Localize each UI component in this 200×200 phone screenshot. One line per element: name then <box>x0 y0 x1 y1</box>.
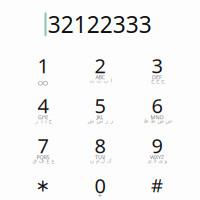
staticText: ﺍ ﺏ ﺕ ﺙ <box>89 78 111 84</box>
staticText: MNO <box>150 114 163 121</box>
staticText: 1 <box>37 52 48 79</box>
staticText: 8 <box>94 132 105 159</box>
button[interactable]: 0 <box>71 172 128 200</box>
staticText: ∗ <box>35 176 50 195</box>
staticText: ﻭ ﻯ ﻻ ﻱ <box>147 158 167 164</box>
staticText: 32122333 <box>48 9 152 39</box>
staticText: ABC <box>95 74 104 81</box>
button[interactable]: Star <box>14 172 71 200</box>
staticText: TUV <box>95 154 105 161</box>
button[interactable]: One, voicemail <box>14 52 71 92</box>
button[interactable]: 8 <box>71 132 128 172</box>
staticText: ﺝ ﺡ ﺥ <box>150 78 163 84</box>
staticText: PQRS <box>36 154 49 161</box>
staticText: 9 <box>151 132 162 159</box>
button[interactable]: 5 <box>71 92 128 132</box>
staticText: ﺥ ﺩ ﺫ ﺭ <box>35 118 51 124</box>
staticText: GHI <box>38 114 48 121</box>
staticText: ﺹ ﺽ ﻁ ﻅ <box>143 118 171 124</box>
staticText: 3 <box>151 52 162 79</box>
staticText: # <box>151 173 163 197</box>
staticText: ﻉ ﻍ ﻑ ﻕ <box>32 158 54 164</box>
staticText: 0 <box>94 172 105 199</box>
staticText: JKL <box>96 114 103 121</box>
button[interactable]: 4 <box>14 92 71 132</box>
staticText: 5 <box>94 92 105 119</box>
staticText: ﺭ ﺯ ﺱ ﺵ <box>87 118 113 124</box>
button[interactable]: 9 <box>128 132 185 172</box>
staticText: 4 <box>37 92 48 119</box>
staticText: WXYZ <box>150 154 164 161</box>
staticText: 7 <box>37 132 48 159</box>
button[interactable]: 2 <box>71 52 128 92</box>
staticText: 6 <box>151 92 162 119</box>
staticText: + <box>98 191 102 200</box>
staticText: ﻙ ﻝ ﻡ ﻥ <box>89 158 110 164</box>
button[interactable]: 6 <box>128 92 185 132</box>
button[interactable]: 3 <box>128 52 185 92</box>
staticText: DEF <box>152 74 162 81</box>
button[interactable]: Pound <box>128 172 185 200</box>
button[interactable]: 7 <box>14 132 71 172</box>
staticText: 2 <box>94 52 105 79</box>
